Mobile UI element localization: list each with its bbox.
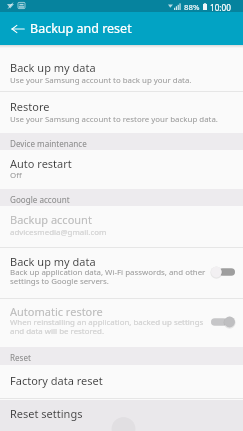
- staticText: Google account: [10, 194, 70, 205]
- staticText: Back up application data, Wi-Fi password…: [10, 267, 207, 286]
- button[interactable]: [0, 92, 243, 133]
- staticText: Off: [10, 170, 22, 181]
- staticText: Auto restart: [10, 156, 72, 171]
- button[interactable]: Back: [6, 12, 30, 45]
- staticText: Restore: [10, 99, 50, 114]
- button[interactable]: [0, 399, 243, 431]
- staticText: When reinstalling an application, backed…: [10, 317, 207, 336]
- staticText: Device maintenance: [10, 138, 87, 149]
- staticText: Reset: [10, 352, 31, 363]
- staticText: Automatic restore: [10, 304, 103, 319]
- staticText: advicesmedia@gmail.com: [10, 227, 107, 238]
- staticText: Use your Samsung account to back up your…: [10, 75, 192, 86]
- button[interactable]: [0, 206, 243, 247]
- staticText: Backup account: [10, 212, 92, 227]
- staticText: Use your Samsung account to restore your…: [10, 114, 218, 125]
- staticText: Backup and reset: [30, 20, 132, 37]
- staticText: Back up my data: [10, 60, 96, 75]
- button[interactable]: [0, 299, 243, 347]
- staticText: Factory data reset: [10, 373, 103, 388]
- button[interactable]: [0, 365, 243, 398]
- button[interactable]: [0, 150, 243, 189]
- staticText: 88%: [184, 2, 200, 13]
- button[interactable]: [0, 248, 243, 298]
- staticText: Reset settings: [10, 406, 83, 421]
- button[interactable]: [0, 45, 243, 91]
- staticText: 10:00: [210, 2, 231, 13]
- staticText: Back up my data: [10, 254, 96, 269]
